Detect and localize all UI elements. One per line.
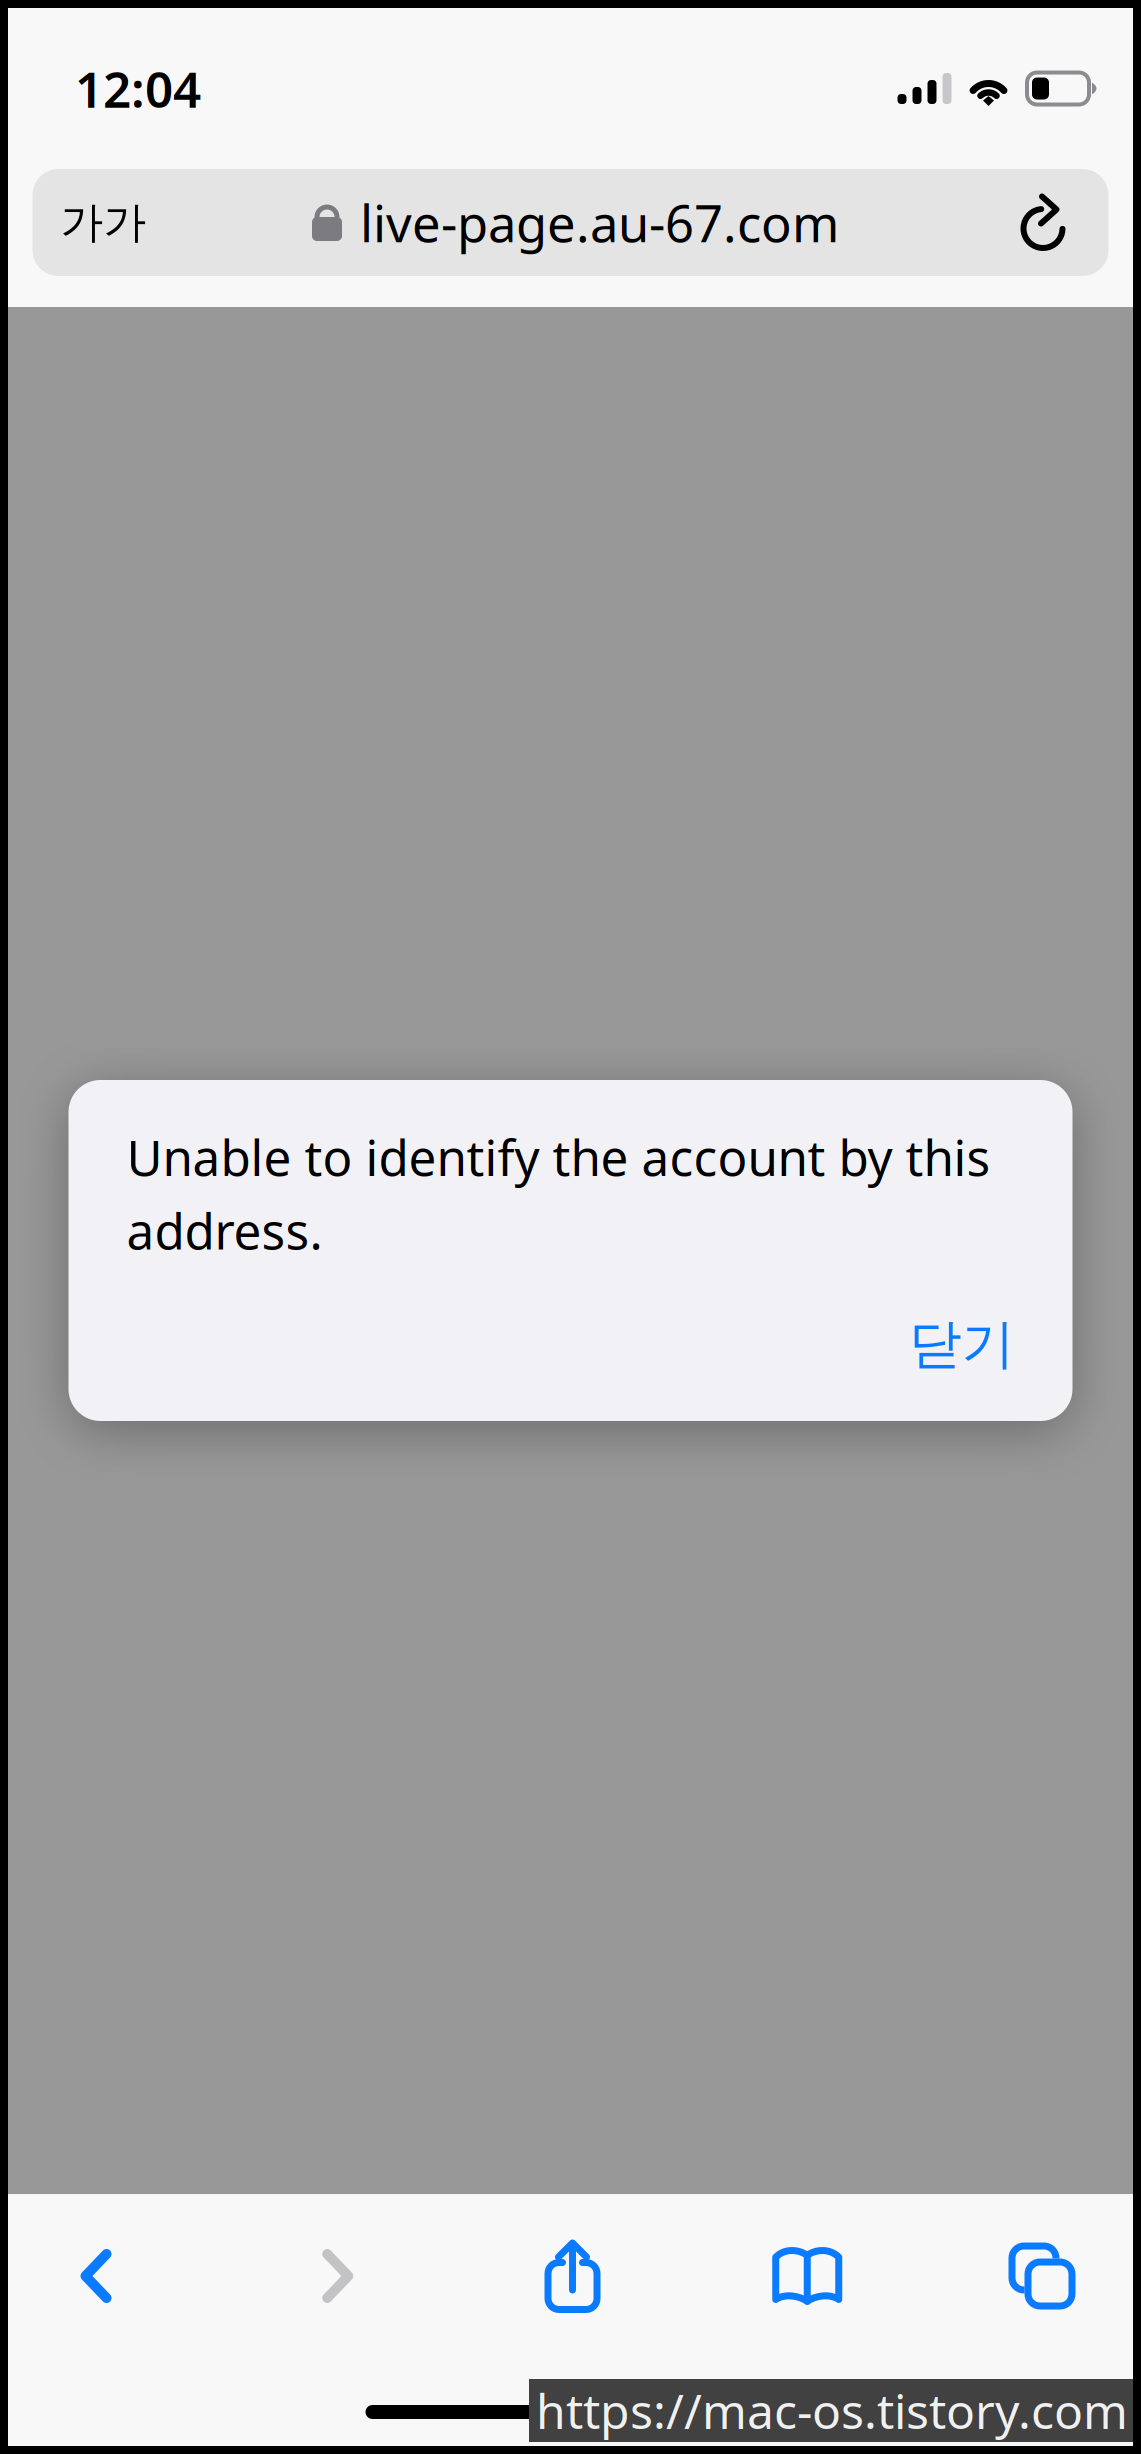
button[interactable]: Bookmarks <box>732 2220 882 2332</box>
button[interactable]: 닫기 <box>882 1303 1014 1385</box>
staticText: 가가 <box>60 196 146 249</box>
staticText: Unable to identify the account by this a… <box>126 1124 990 1263</box>
button[interactable]: Tabs <box>967 2220 1117 2332</box>
staticText: https://mac-os.tistory.com <box>536 2379 1128 2442</box>
button[interactable]: Share <box>497 2220 647 2332</box>
button[interactable]: Forward <box>263 2220 413 2332</box>
button[interactable]: Back <box>28 2220 178 2332</box>
staticText: 닫기 <box>908 1311 1014 1377</box>
staticText: live-page.au-67.com <box>360 189 839 256</box>
button[interactable]: 가가 <box>32 169 174 276</box>
staticText: 12:04 <box>75 56 201 121</box>
button[interactable]: Reload page <box>982 169 1108 276</box>
